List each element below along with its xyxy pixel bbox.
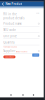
staticText: All fields required [15, 51, 27, 53]
button[interactable]: Back [1, 2, 4, 6]
staticText: Quantity [3, 41, 14, 44]
staticText: Save [34, 54, 38, 56]
staticText: Fill in the [3, 12, 17, 16]
staticText: Supplier [3, 49, 15, 53]
staticText: Unit price [3, 34, 17, 38]
staticText: This field is required [3, 46, 17, 48]
button[interactable]: Unit price [3, 34, 39, 39]
button[interactable]: Product name [3, 22, 39, 26]
staticText: Upload image [5, 56, 14, 58]
staticText: Product name [3, 22, 22, 25]
button[interactable]: Upload image [3, 55, 15, 58]
button[interactable]: Quantity [3, 41, 39, 45]
staticText: Details [35, 12, 39, 14]
button[interactable]: SKU code [3, 28, 39, 33]
button[interactable]: Save [32, 53, 39, 57]
button[interactable]: Supplier [3, 49, 39, 54]
staticText: SKU code [3, 28, 16, 32]
staticText: product details [3, 16, 24, 20]
staticText: New Product [5, 2, 22, 6]
